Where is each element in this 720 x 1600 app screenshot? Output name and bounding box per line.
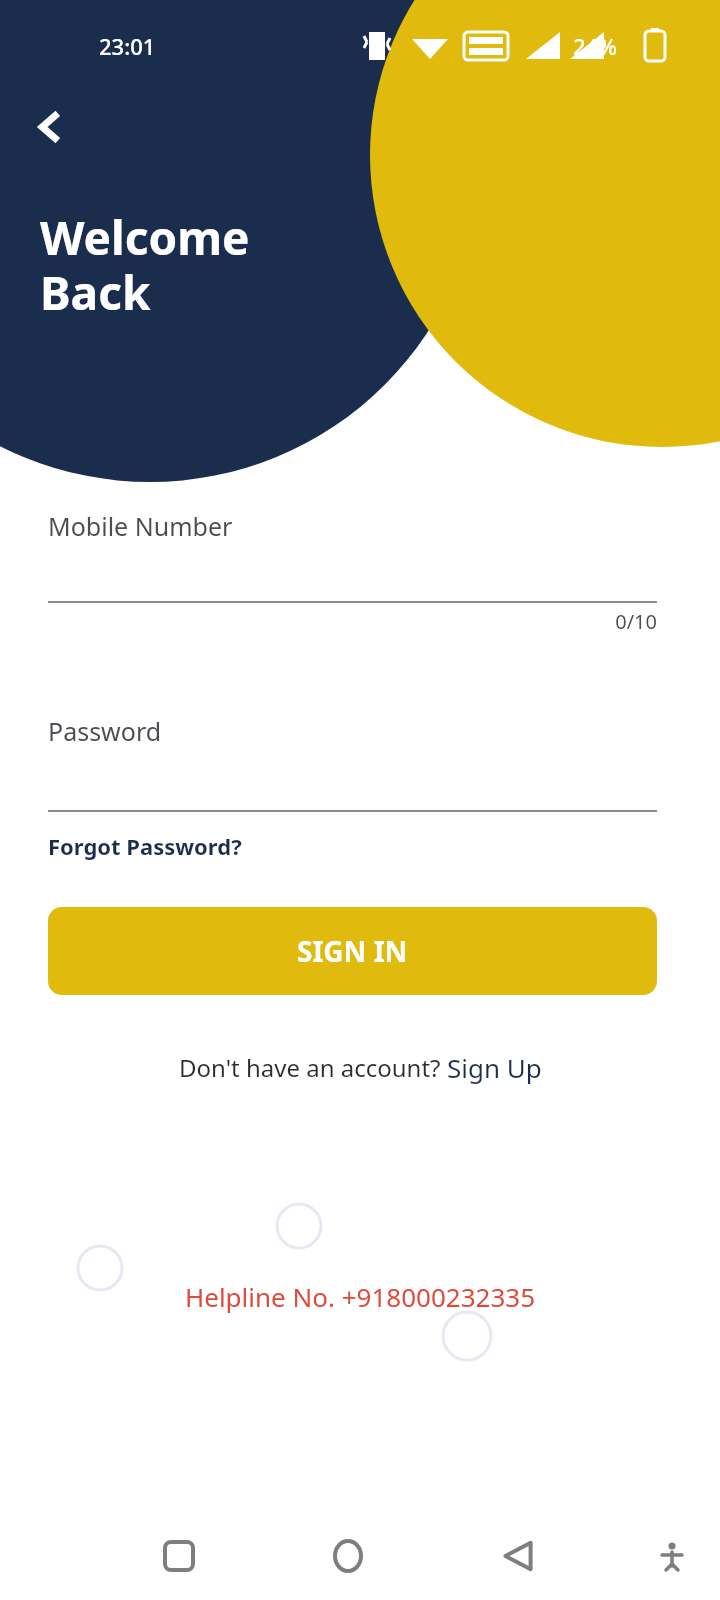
staticText: SIGN IN bbox=[297, 932, 408, 970]
staticText: 23:01 bbox=[99, 31, 156, 61]
button[interactable]: Mobile Number bbox=[48, 509, 233, 543]
button[interactable]: Sign Up bbox=[447, 1050, 542, 1085]
button[interactable]: Recent apps bbox=[155, 1532, 203, 1580]
button[interactable]: Helpline No. +918000232335 bbox=[0, 1279, 720, 1314]
button[interactable]: Password bbox=[48, 714, 162, 748]
button[interactable]: Back bbox=[494, 1532, 542, 1580]
button[interactable]: Forgot Password? bbox=[48, 831, 242, 861]
button[interactable]: Home bbox=[324, 1532, 372, 1580]
staticText: Welcome Back bbox=[40, 206, 250, 324]
button[interactable]: Accessibility bbox=[648, 1532, 696, 1580]
button[interactable]: SIGN IN bbox=[48, 907, 657, 995]
staticText: Don't have an account? bbox=[179, 1051, 447, 1084]
staticText: 0/10 bbox=[48, 608, 657, 635]
staticText: 24% bbox=[573, 31, 617, 61]
button[interactable]: Back bbox=[20, 96, 82, 158]
